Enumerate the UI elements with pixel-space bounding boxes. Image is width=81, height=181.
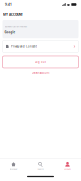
button[interactable]: Search bbox=[27, 159, 54, 173]
staticText: Log out bbox=[35, 60, 46, 64]
staticText: 9:41 bbox=[5, 2, 12, 7]
staticText: Privacy and Consent bbox=[11, 45, 37, 48]
button[interactable]: Privacy and Consent bbox=[2, 40, 78, 52]
staticText: Discover bbox=[9, 167, 17, 170]
staticText: authentication method bbox=[4, 25, 26, 28]
staticText: Delete account bbox=[31, 71, 49, 75]
button[interactable]: Delete account bbox=[0, 69, 81, 77]
staticText: Google bbox=[4, 30, 15, 34]
staticText: Account bbox=[64, 167, 71, 170]
staticText: Search bbox=[37, 167, 43, 170]
staticText: MY ACCOUNT bbox=[3, 12, 23, 17]
button[interactable]: Discover bbox=[0, 159, 27, 173]
button[interactable]: Account bbox=[54, 159, 81, 173]
button[interactable]: Log out bbox=[2, 56, 78, 68]
